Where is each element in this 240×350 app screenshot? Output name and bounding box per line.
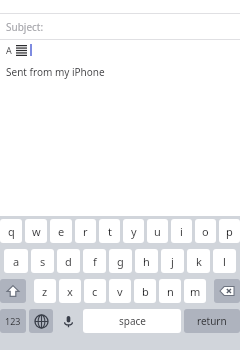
staticText: q bbox=[8, 224, 15, 239]
staticText: u bbox=[154, 224, 161, 239]
staticText: A bbox=[6, 44, 12, 56]
button[interactable]: g bbox=[109, 249, 132, 273]
button[interactable]: Shift bbox=[0, 279, 26, 303]
staticText: z bbox=[42, 284, 48, 299]
staticText: Sent from my iPhone bbox=[6, 65, 105, 79]
button[interactable]: Backspace bbox=[214, 279, 240, 303]
button[interactable]: a bbox=[4, 249, 28, 273]
button[interactable]: return bbox=[184, 309, 240, 333]
staticText: s bbox=[40, 254, 46, 269]
button[interactable]: s bbox=[31, 249, 54, 273]
button[interactable]: d bbox=[57, 249, 80, 273]
button[interactable]: Dictate bbox=[56, 309, 80, 333]
staticText: v bbox=[117, 284, 123, 299]
staticText: k bbox=[196, 254, 202, 269]
staticText: w bbox=[32, 224, 41, 239]
button[interactable]: c bbox=[84, 279, 106, 303]
button[interactable]: Subject: bbox=[0, 14, 240, 39]
staticText: c bbox=[92, 284, 98, 299]
button[interactable]: x bbox=[59, 279, 81, 303]
button[interactable]: space bbox=[83, 309, 181, 333]
staticText: 123 bbox=[5, 315, 21, 327]
button[interactable]: y bbox=[123, 219, 144, 243]
button[interactable]: b bbox=[134, 279, 156, 303]
button[interactable]: o bbox=[195, 219, 216, 243]
staticText: h bbox=[143, 254, 150, 269]
button[interactable]: v bbox=[109, 279, 131, 303]
staticText: x bbox=[67, 284, 73, 299]
staticText: f bbox=[93, 254, 97, 269]
staticText: j bbox=[171, 254, 174, 269]
staticText: e bbox=[58, 224, 65, 239]
staticText: r bbox=[83, 224, 88, 239]
staticText: l bbox=[223, 254, 226, 269]
button[interactable]: k bbox=[187, 249, 210, 273]
staticText: a bbox=[13, 254, 20, 269]
button[interactable]: p bbox=[219, 219, 240, 243]
button[interactable]: q bbox=[0, 219, 22, 243]
staticText: i bbox=[180, 224, 183, 239]
staticText: o bbox=[202, 224, 209, 239]
button[interactable]: w bbox=[25, 219, 47, 243]
button[interactable]: i bbox=[171, 219, 192, 243]
button[interactable]: j bbox=[161, 249, 184, 273]
button[interactable]: l bbox=[213, 249, 236, 273]
staticText: y bbox=[131, 224, 137, 239]
button[interactable]: 123 bbox=[0, 309, 26, 333]
button[interactable]: n bbox=[159, 279, 181, 303]
staticText: d bbox=[65, 254, 72, 269]
button[interactable]: m bbox=[184, 279, 206, 303]
button[interactable]: Change keyboard bbox=[29, 309, 53, 333]
staticText: b bbox=[142, 284, 149, 299]
button[interactable]: f bbox=[83, 249, 106, 273]
staticText: t bbox=[108, 224, 112, 239]
button[interactable]: t bbox=[99, 219, 120, 243]
button[interactable]: Sent from my iPhone bbox=[0, 60, 240, 84]
staticText: p bbox=[226, 224, 233, 239]
button[interactable]: r bbox=[75, 219, 96, 243]
staticText: n bbox=[167, 284, 174, 299]
staticText: space bbox=[119, 314, 146, 328]
staticText: m bbox=[190, 284, 201, 299]
button[interactable]: h bbox=[135, 249, 158, 273]
button[interactable]: z bbox=[34, 279, 56, 303]
staticText: Subject: bbox=[6, 20, 44, 34]
staticText: g bbox=[117, 254, 124, 269]
button[interactable]: e bbox=[50, 219, 72, 243]
button[interactable]: u bbox=[147, 219, 168, 243]
staticText: return bbox=[197, 314, 227, 328]
